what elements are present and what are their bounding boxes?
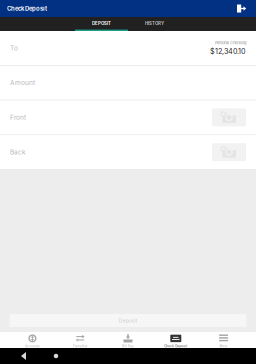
button[interactable]: Bill Pay [104,332,152,348]
button[interactable]: HISTORY [128,17,181,31]
staticText: Accounts [25,344,40,348]
button[interactable]: More [200,332,247,348]
staticText: Deposit [118,317,137,324]
button[interactable]: DEPOSIT [75,17,128,31]
staticText: To [10,44,18,52]
staticText: Personal Checking [215,40,246,45]
staticText: Back [10,148,26,156]
staticText: HISTORY [145,21,164,26]
button[interactable]: Home [49,349,63,363]
staticText: Transfers [73,344,88,348]
staticText: DEPOSIT [92,21,111,26]
staticText: Amount [10,79,35,87]
button[interactable]: Check Deposit [152,332,200,348]
staticText: More [220,344,228,348]
button[interactable]: Capture Front of check [212,108,246,126]
button[interactable]: Accounts [8,332,56,348]
staticText: Check Deposit [164,344,187,348]
staticText: Front [10,113,26,121]
button[interactable]: Log out [234,2,250,15]
staticText: Bill Pay [122,344,134,348]
staticText: Check Deposit [7,5,47,12]
button[interactable]: Back [17,349,31,363]
button[interactable]: Transfers [56,332,104,348]
button[interactable]: Capture Back of check [212,143,246,161]
staticText: $12,340.10 [210,47,246,56]
